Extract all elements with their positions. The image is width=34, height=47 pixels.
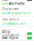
staticText: NOTIFICATIONS: [2, 29, 12, 31]
button[interactable]: Email digest: [0, 36, 34, 40]
staticText: Email digest: [2, 36, 18, 40]
staticText: jon@example.com: [2, 22, 25, 25]
staticText: Jonathan Appleseed: [2, 11, 31, 15]
button[interactable]: Cancel: [0, 2, 11, 6]
staticText: Cancel: [1, 2, 10, 6]
staticText: Email address: [2, 18, 19, 21]
button[interactable]: Allow notifications: [0, 32, 34, 36]
staticText: Allow notifications: [2, 30, 19, 37]
staticText: 9:41: [2, 0, 9, 2]
staticText: Display name: [2, 7, 19, 11]
staticText: Edit Profile: [9, 2, 25, 6]
